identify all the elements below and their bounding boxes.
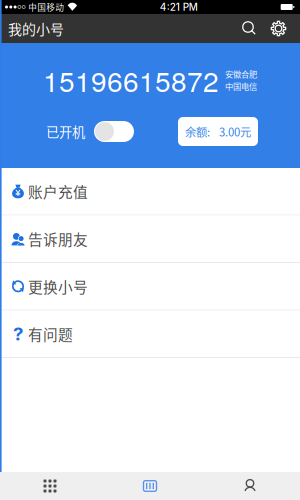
staticText: 已开机 [46, 122, 85, 141]
button[interactable]: Apps [0, 472, 100, 500]
staticText: 4:21 PM [160, 1, 198, 13]
button[interactable]: Search [235, 14, 264, 43]
button[interactable]: 账户充值 [0, 168, 300, 215]
button[interactable]: 已开机 [46, 117, 134, 146]
staticText: 安徽合肥 [225, 68, 257, 80]
button[interactable]: 余额: 3.00元 [178, 117, 258, 146]
staticText: 告诉朋友 [28, 228, 88, 249]
button[interactable]: ? [0, 310, 300, 358]
staticText: 余额: 3.00元 [185, 123, 251, 140]
button[interactable]: 更换小号 [0, 263, 300, 310]
staticText: 中国移动 [28, 1, 64, 13]
button[interactable]: Profile [200, 472, 300, 500]
staticText: 有问题 [28, 323, 73, 344]
staticText: 账户充值 [28, 181, 88, 202]
button[interactable]: Settings [264, 14, 293, 43]
staticText: ? [13, 322, 23, 345]
staticText: 更换小号 [28, 276, 88, 297]
staticText: 15196615872 [43, 60, 219, 100]
button[interactable]: Library [100, 472, 200, 500]
staticText: 中国电信 [225, 80, 257, 92]
button[interactable]: 告诉朋友 [0, 215, 300, 263]
staticText: 我的小号 [8, 18, 64, 39]
